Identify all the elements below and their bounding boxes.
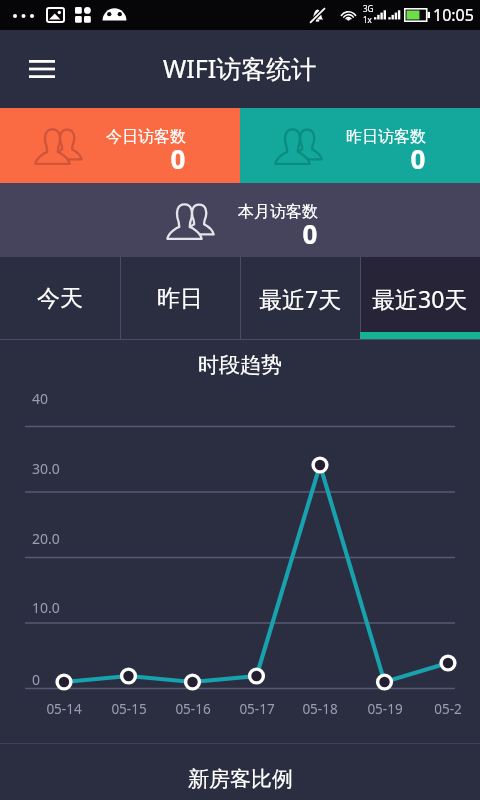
button[interactable]: 本月访客数	[0, 183, 480, 257]
staticText: 昨日	[157, 284, 203, 313]
button[interactable]: 最近30天	[360, 257, 480, 339]
staticText: 1x	[363, 14, 372, 25]
staticText: 10.0	[32, 598, 60, 617]
staticText: 30.0	[32, 459, 60, 478]
button[interactable]: 昨日	[120, 257, 240, 339]
staticText: 05-18	[293, 700, 347, 718]
button[interactable]: 今天	[0, 257, 120, 339]
staticText: 05-16	[166, 700, 220, 718]
staticText: 0	[32, 670, 41, 689]
staticText: 40	[32, 389, 49, 408]
staticText: 最近30天	[372, 283, 468, 314]
staticText: 20.0	[32, 529, 60, 548]
button[interactable]: 今日访客数	[0, 108, 240, 183]
staticText: 05-15	[102, 700, 156, 718]
staticText: 05-14	[37, 700, 91, 718]
staticText: 3G	[363, 3, 374, 14]
staticText: 05-2	[421, 700, 475, 718]
staticText: 10:05	[433, 4, 474, 26]
staticText: 05-17	[230, 700, 284, 718]
staticText: 05-19	[358, 700, 412, 718]
button[interactable]: 昨日访客数	[240, 108, 480, 183]
staticText: 新房客比例	[188, 766, 293, 792]
staticText: 最近7天	[259, 283, 342, 314]
staticText: 昨日访客数	[346, 127, 426, 147]
button[interactable]: Menu	[16, 43, 68, 95]
staticText: 时段趋势	[198, 352, 282, 378]
staticText: 今日访客数	[106, 127, 186, 147]
button[interactable]: 最近7天	[240, 257, 360, 339]
staticText: 0	[405, 141, 431, 176]
staticText: 0	[165, 141, 191, 176]
staticText: 0	[297, 216, 323, 251]
staticText: WIFI访客统计	[163, 51, 317, 85]
staticText: 今天	[37, 284, 83, 313]
staticText: 本月访客数	[238, 202, 318, 222]
